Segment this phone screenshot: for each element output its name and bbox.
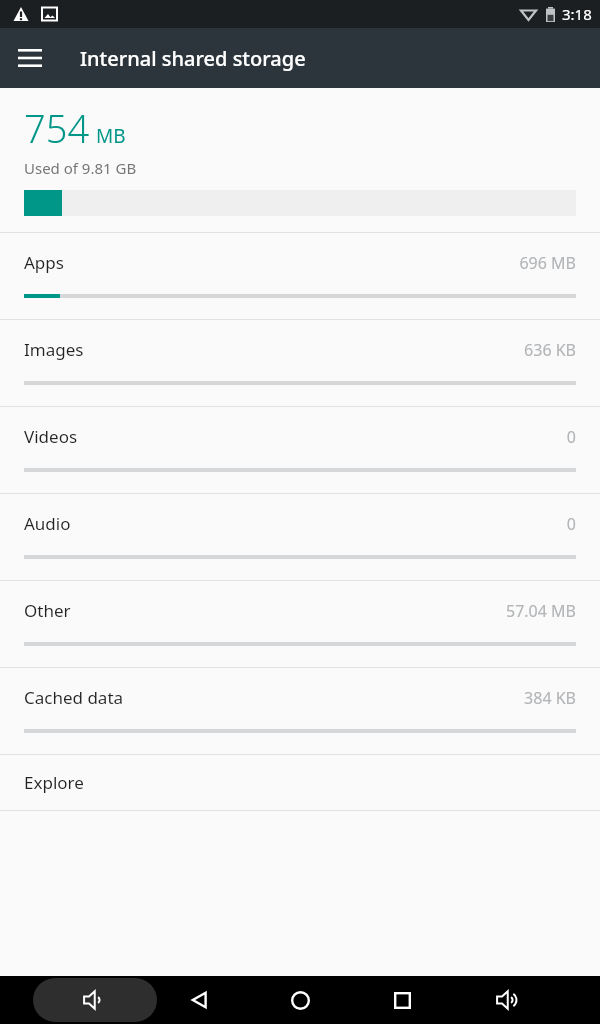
button[interactable]: Recent apps [372,978,432,1022]
button[interactable]: Cached data [0,668,600,754]
staticText: Audio [24,512,71,535]
button[interactable]: Audio [0,494,600,580]
button[interactable]: Explore [0,755,600,810]
button[interactable]: Images [0,320,600,406]
button[interactable]: Back [170,978,230,1022]
button[interactable]: Volume down [33,978,157,1022]
button[interactable]: Home [270,978,330,1022]
button[interactable]: Volume up [478,978,538,1022]
staticText: 3:18 [562,4,592,24]
staticText: Other [24,599,71,622]
button[interactable]: Apps [0,233,600,319]
button[interactable]: Videos [0,407,600,493]
staticText: 0 [566,513,576,535]
staticText: 57.04 MB [506,600,576,622]
staticText: 384 KB [524,687,576,709]
staticText: Apps [24,251,64,274]
staticText: 0 [566,426,576,448]
button[interactable]: Other [0,581,600,667]
staticText: Explore [24,771,84,794]
staticText: Cached data [24,686,124,709]
staticText: 754 [24,102,90,154]
staticText: MB [96,123,126,149]
staticText: 696 MB [519,252,576,274]
staticText: Internal shared storage [80,45,306,72]
staticText: Used of 9.81 GB [24,158,137,178]
staticText: Videos [24,425,78,448]
button[interactable]: Open navigation menu [0,28,60,88]
staticText: 636 KB [524,339,576,361]
staticText: Images [24,338,84,361]
